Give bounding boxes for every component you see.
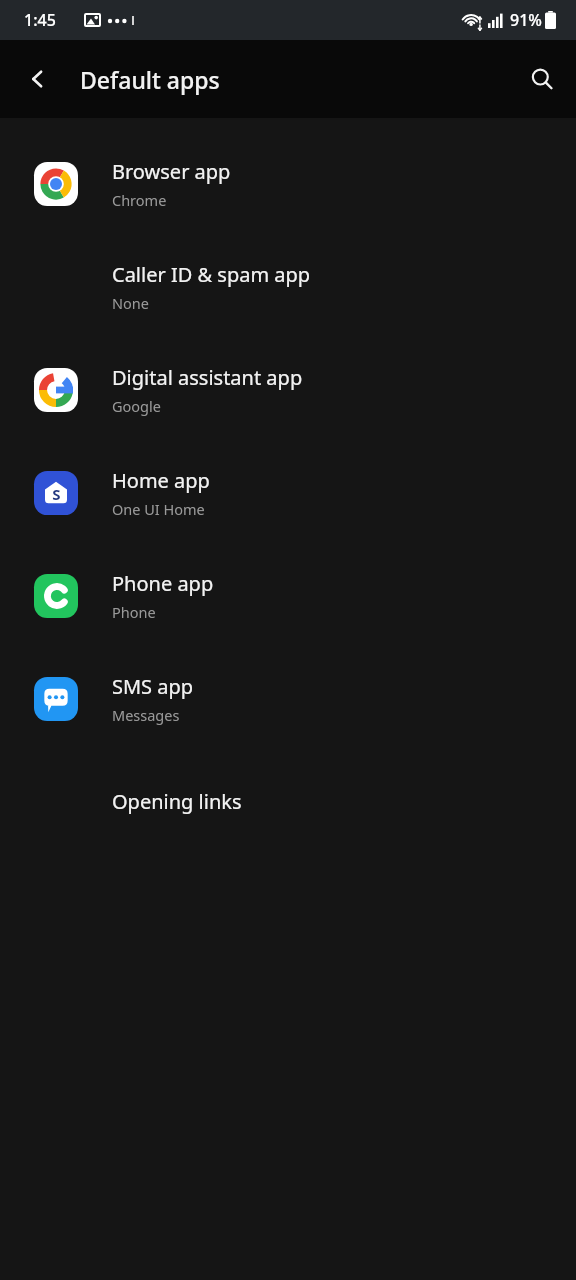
staticText: Digital assistant app <box>112 364 303 391</box>
button[interactable]: Digital assistant app <box>0 338 576 441</box>
staticText: One UI Home <box>112 499 205 519</box>
button[interactable]: Browser app <box>0 132 576 235</box>
button[interactable]: Back <box>10 51 66 107</box>
staticText: Home app <box>112 467 210 494</box>
staticText: Browser app <box>112 158 231 185</box>
staticText: Phone <box>112 602 156 622</box>
staticText: Phone app <box>112 570 214 597</box>
staticText: None <box>112 293 149 313</box>
staticText: Chrome <box>112 190 167 210</box>
staticText: Messages <box>112 705 180 725</box>
button[interactable]: Search <box>514 51 570 107</box>
button[interactable]: Phone app <box>0 544 576 647</box>
staticText: Google <box>112 396 161 416</box>
staticText: S <box>52 484 61 504</box>
button[interactable]: Caller ID & spam app <box>0 235 576 338</box>
button[interactable]: S <box>0 441 576 544</box>
staticText: 91% <box>510 9 542 31</box>
button[interactable]: SMS app <box>0 647 576 750</box>
staticText: Default apps <box>80 64 220 95</box>
staticText: Caller ID & spam app <box>112 261 311 288</box>
button[interactable]: Opening links <box>0 750 576 853</box>
staticText: SMS app <box>112 673 194 700</box>
staticText: Opening links <box>112 788 242 815</box>
staticText: 1:45 <box>24 9 56 31</box>
